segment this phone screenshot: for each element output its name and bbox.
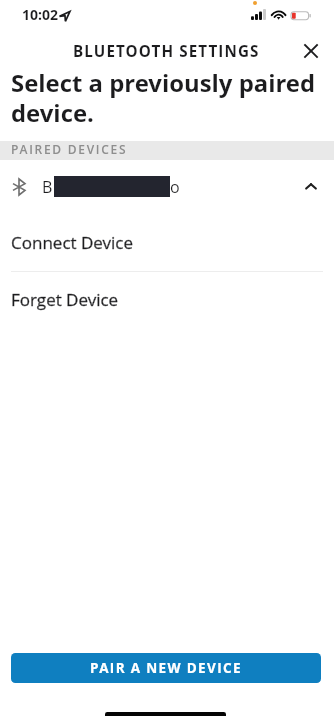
button[interactable]: Forget Device [0,272,334,328]
button[interactable]: Connect Device [0,220,334,271]
staticText: Connect Device [11,231,133,254]
button[interactable]: Close [294,34,328,68]
staticText: o [170,176,180,198]
staticText: BLUETOOTH SETTINGS [73,41,260,62]
staticText: PAIRED DEVICES [11,141,128,157]
staticText: Forget Device [11,288,119,311]
button[interactable]: B [0,160,334,212]
staticText: Connect Device [11,231,133,254]
staticText: Forget Device [11,288,119,311]
staticText: PAIR A NEW DEVICE [90,659,242,677]
staticText: 10:02 [22,5,58,24]
staticText: Select a previously paired device. [11,66,319,129]
button[interactable]: PAIR A NEW DEVICE [11,653,321,683]
staticText: B [42,176,53,198]
